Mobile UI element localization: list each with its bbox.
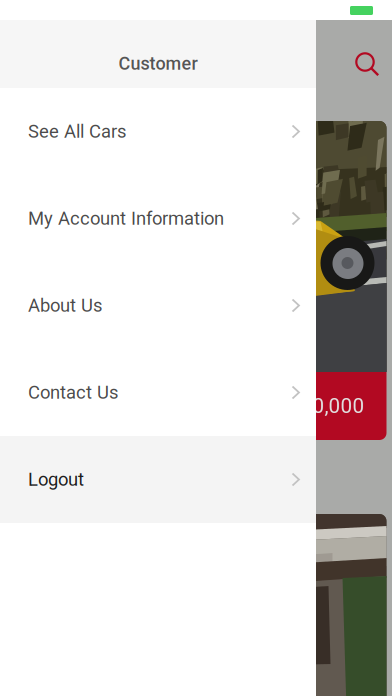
staticText: See All Cars bbox=[28, 121, 126, 142]
button[interactable]: My Account Information bbox=[0, 175, 316, 262]
staticText: Logout bbox=[28, 469, 84, 490]
button[interactable]: See All Cars bbox=[0, 88, 316, 175]
button[interactable]: Contact Us bbox=[0, 349, 316, 436]
button[interactable]: About Us bbox=[0, 262, 316, 349]
staticText: Customer bbox=[118, 53, 197, 74]
staticText: Contact Us bbox=[28, 382, 118, 403]
staticText: $120,000 bbox=[276, 394, 364, 418]
button[interactable]: $89,500 bbox=[16, 514, 386, 696]
staticText: My Account Information bbox=[28, 208, 224, 229]
button[interactable]: $120,000 bbox=[16, 121, 386, 440]
staticText: About Us bbox=[28, 295, 102, 316]
button[interactable]: Search bbox=[340, 20, 392, 88]
button[interactable]: Logout bbox=[0, 436, 316, 523]
